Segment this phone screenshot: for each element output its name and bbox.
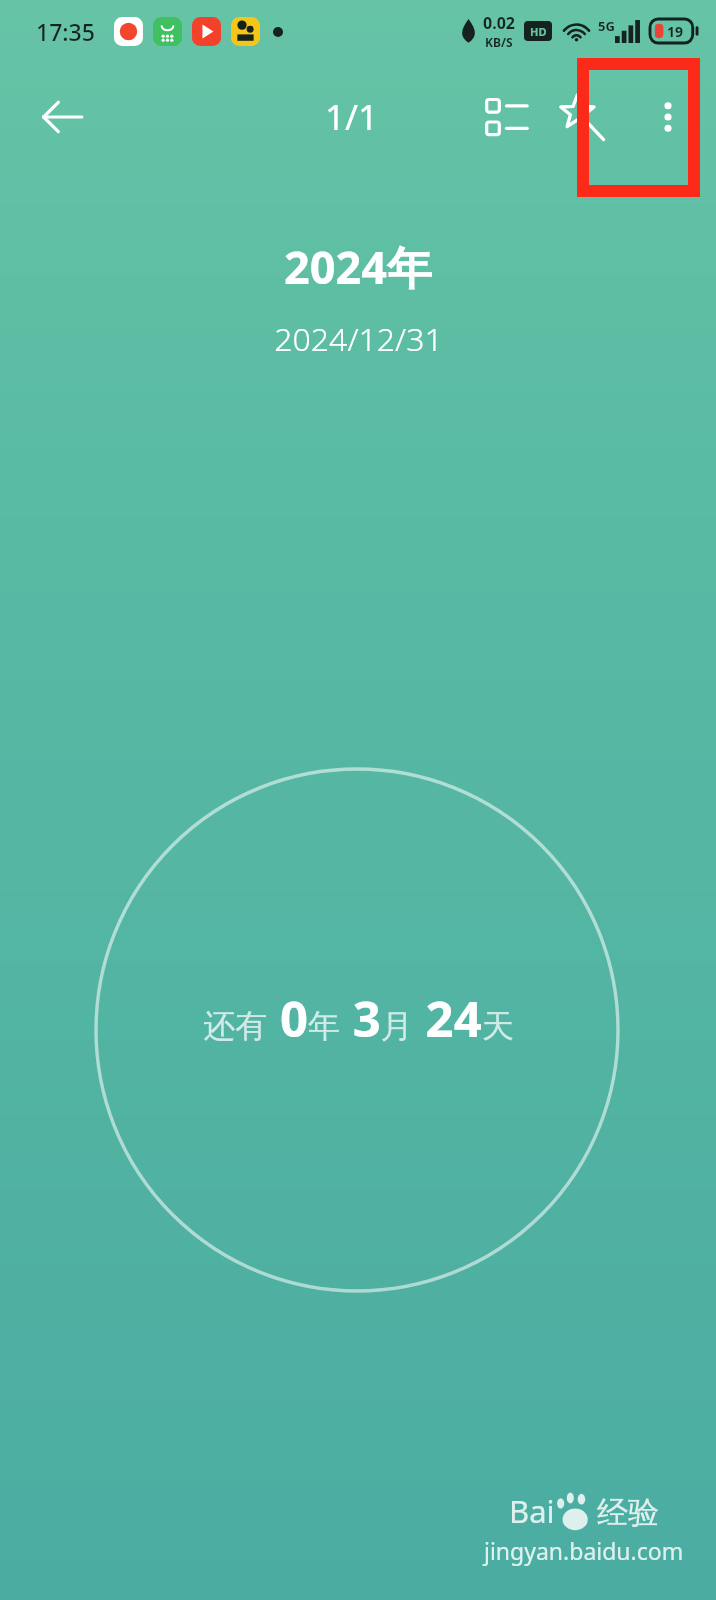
staticText: 经验 — [597, 1493, 659, 1532]
staticText: jingyan.baidu.com — [484, 1535, 684, 1566]
staticText: 19 — [667, 22, 684, 41]
staticText: 5G — [598, 17, 615, 35]
staticText: 0.02 — [483, 12, 515, 34]
staticText: Bai — [509, 1490, 555, 1532]
button[interactable]: Back — [20, 75, 104, 159]
staticText: 17:35 — [36, 16, 95, 47]
staticText: KB/S — [485, 34, 513, 50]
button[interactable]: Theme — [540, 75, 624, 159]
button[interactable]: List view — [464, 75, 548, 159]
staticText: 2024/12/31 — [274, 317, 443, 361]
button[interactable]: More options — [626, 75, 710, 159]
staticText: 2024年 — [284, 236, 432, 297]
staticText: 还有 0年 3月 24天 — [203, 985, 514, 1052]
staticText: 1/1 — [325, 93, 379, 141]
staticText: HD — [530, 24, 547, 39]
